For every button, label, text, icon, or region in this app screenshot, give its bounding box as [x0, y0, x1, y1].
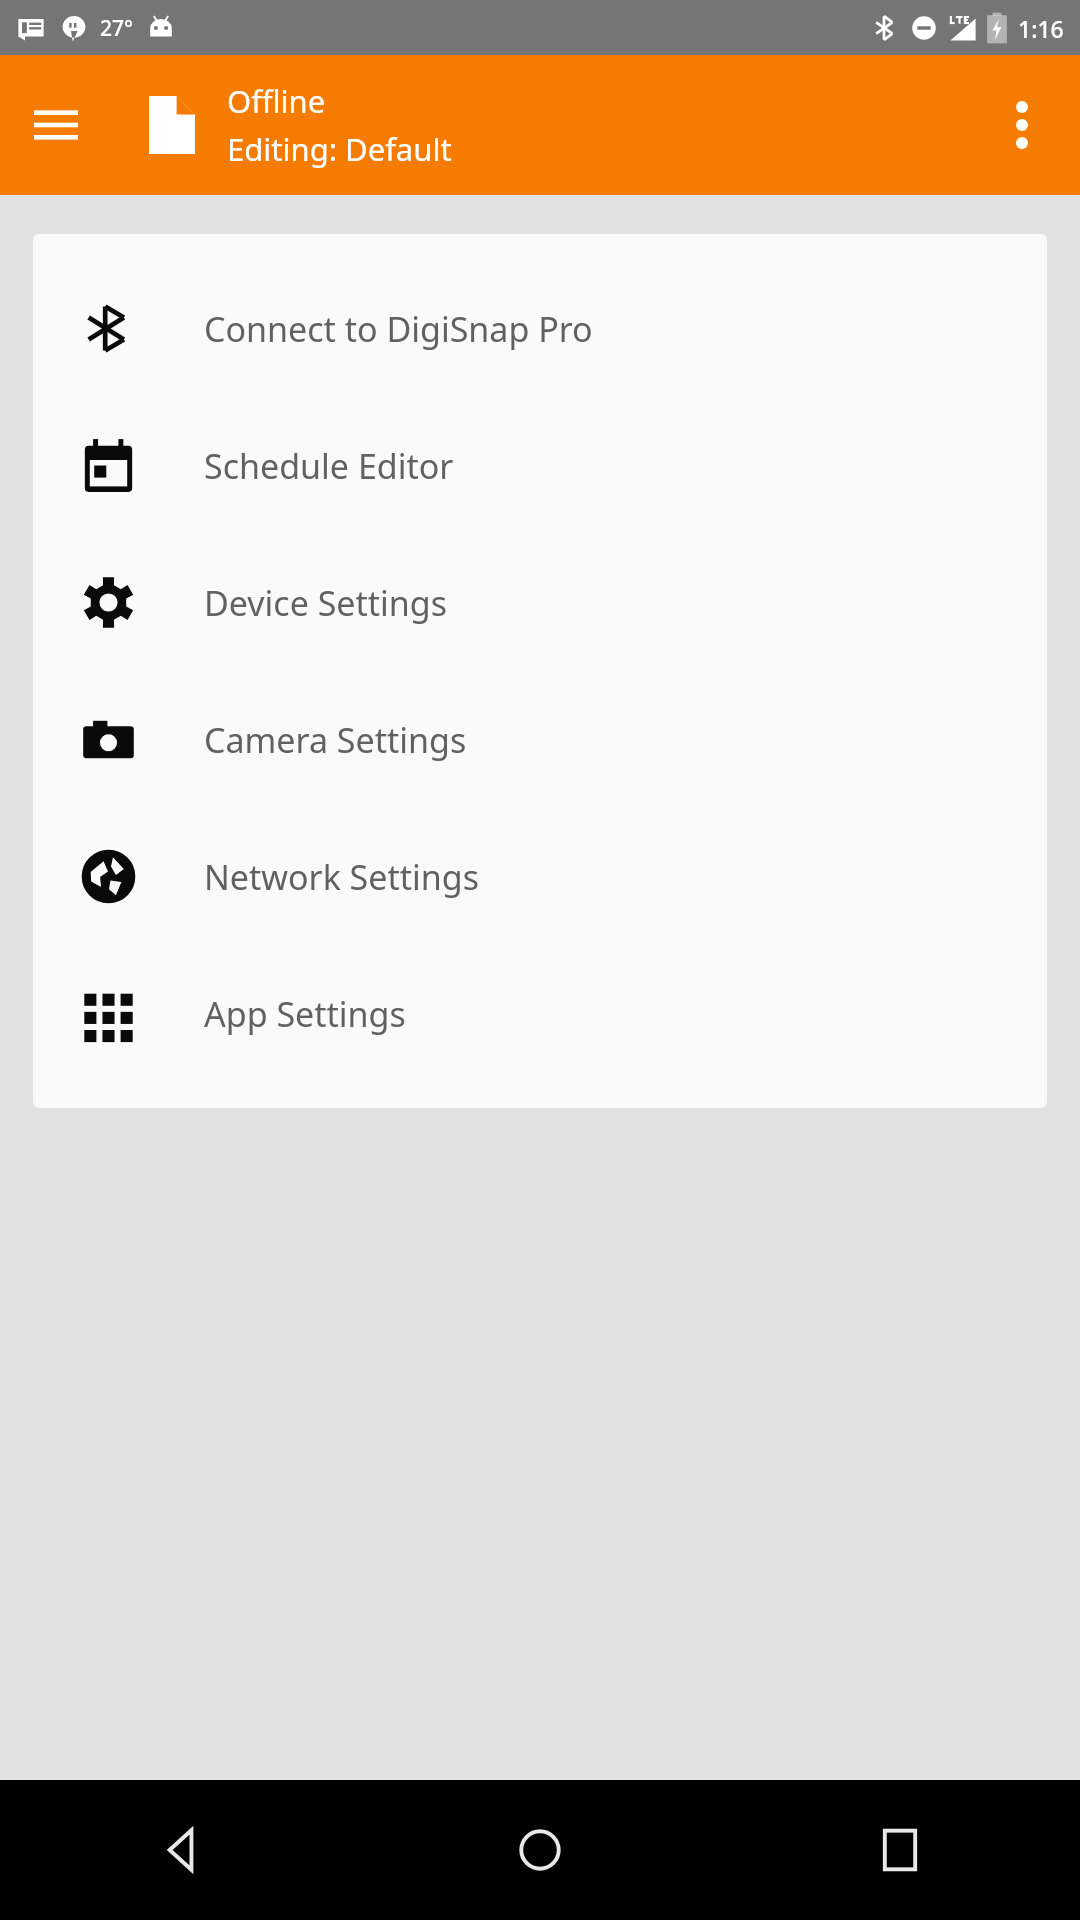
staticText: Camera Settings	[204, 717, 467, 763]
button[interactable]: Connect to DigiSnap Pro	[33, 260, 1047, 397]
staticText: Network Settings	[204, 854, 479, 900]
button[interactable]: Home	[360, 1780, 720, 1920]
button[interactable]: Open navigation drawer	[24, 93, 88, 157]
staticText: 1:16	[1018, 13, 1064, 44]
staticText: Connect to DigiSnap Pro	[204, 306, 593, 352]
button[interactable]: More options	[986, 89, 1058, 161]
staticText: 27°	[100, 14, 133, 43]
button[interactable]: App Settings	[33, 945, 1047, 1082]
button[interactable]: Schedule Editor	[33, 397, 1047, 534]
button[interactable]: Back	[0, 1780, 360, 1920]
button[interactable]: Recent apps	[720, 1780, 1080, 1920]
staticText: Editing: Default	[227, 128, 452, 170]
staticText: App Settings	[204, 991, 406, 1037]
button[interactable]: Device Settings	[33, 534, 1047, 671]
staticText: Offline	[227, 80, 326, 122]
staticText: Schedule Editor	[204, 443, 454, 489]
button[interactable]: Camera Settings	[33, 671, 1047, 808]
button[interactable]: Network Settings	[33, 808, 1047, 945]
staticText: Device Settings	[204, 580, 448, 626]
